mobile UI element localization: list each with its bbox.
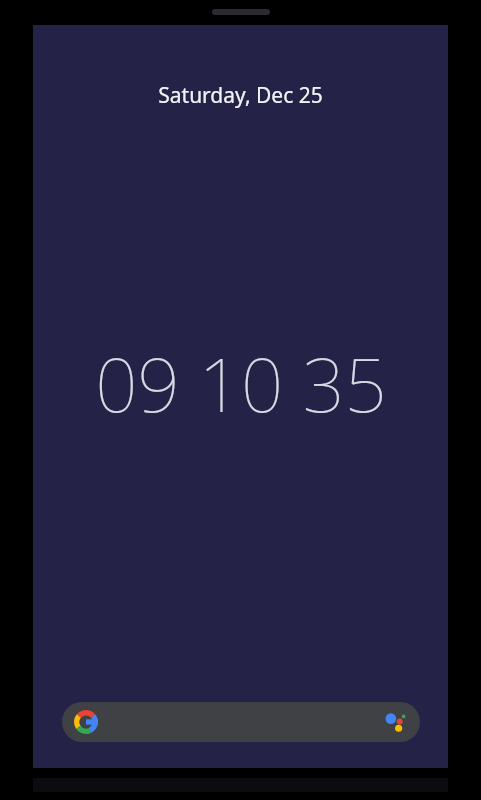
button[interactable]: 09 10 35 <box>33 333 448 434</box>
staticText: Saturday, Dec 25 <box>158 81 323 110</box>
staticText: 09 10 35 <box>95 333 387 434</box>
button[interactable]: Google Search <box>62 702 420 742</box>
button[interactable]: Saturday, Dec 25 <box>33 81 448 110</box>
other: Google Assistant <box>382 709 408 735</box>
other: Google Search <box>74 710 98 734</box>
